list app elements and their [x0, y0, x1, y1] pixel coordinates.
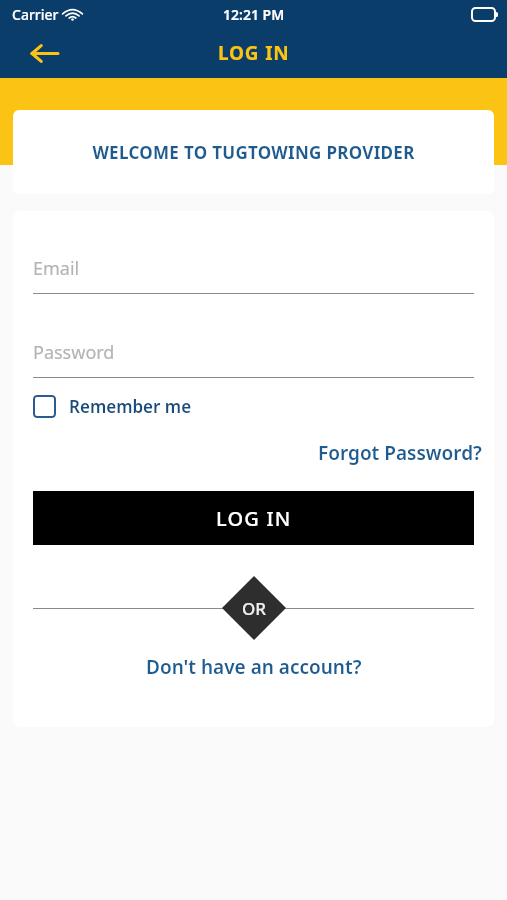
button[interactable]: Email: [33, 242, 474, 294]
staticText: WELCOME TO TUGTOWING PROVIDER: [92, 141, 415, 164]
staticText: Password: [33, 340, 115, 365]
staticText: OR: [242, 597, 267, 620]
button[interactable]: Don't have an account?: [140, 650, 368, 684]
button[interactable]: Remember me: [33, 389, 192, 423]
staticText: Email: [33, 256, 80, 281]
staticText: Carrier: [12, 5, 59, 24]
staticText: Remember me: [69, 395, 192, 418]
staticText: Don't have an account?: [146, 654, 362, 680]
staticText: LOG IN: [218, 40, 290, 66]
staticText: Forgot Password?: [318, 440, 482, 466]
button[interactable]: LOG IN: [33, 491, 474, 545]
staticText: 12:21 PM: [223, 5, 285, 24]
button[interactable]: Forgot Password?: [314, 437, 486, 469]
button[interactable]: Back: [22, 31, 66, 75]
staticText: LOG IN: [216, 505, 292, 532]
button[interactable]: WELCOME TO TUGTOWING PROVIDER: [13, 110, 494, 194]
button[interactable]: Password: [33, 326, 474, 378]
